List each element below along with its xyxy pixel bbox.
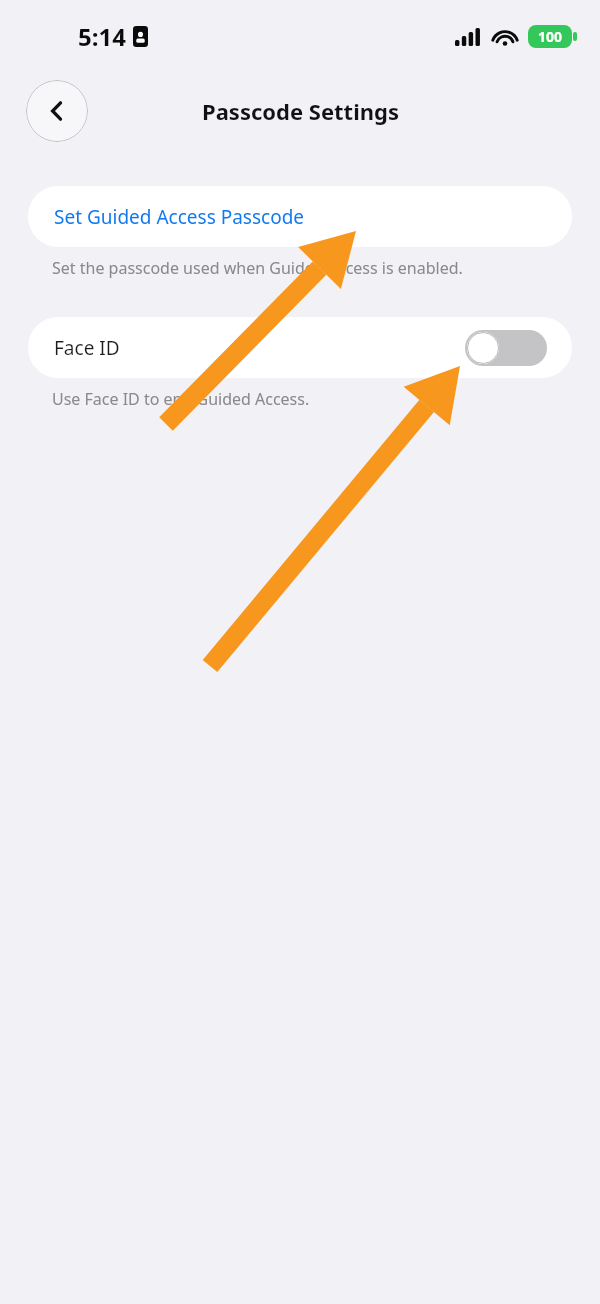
button[interactable]: Face ID toggle, off (465, 330, 547, 366)
button[interactable]: Back (26, 80, 88, 142)
button[interactable]: Face ID (28, 317, 572, 378)
staticText: Set Guided Access Passcode (54, 204, 305, 230)
staticText: Use Face ID to end Guided Access. (52, 388, 310, 410)
staticText: 5:14 (78, 20, 126, 53)
staticText: 100 (538, 27, 563, 46)
button[interactable]: Set Guided Access Passcode (28, 186, 572, 247)
staticText: Passcode Settings (202, 96, 399, 126)
staticText: Face ID (54, 335, 120, 361)
staticText: Set the passcode used when Guided Access… (52, 257, 463, 279)
